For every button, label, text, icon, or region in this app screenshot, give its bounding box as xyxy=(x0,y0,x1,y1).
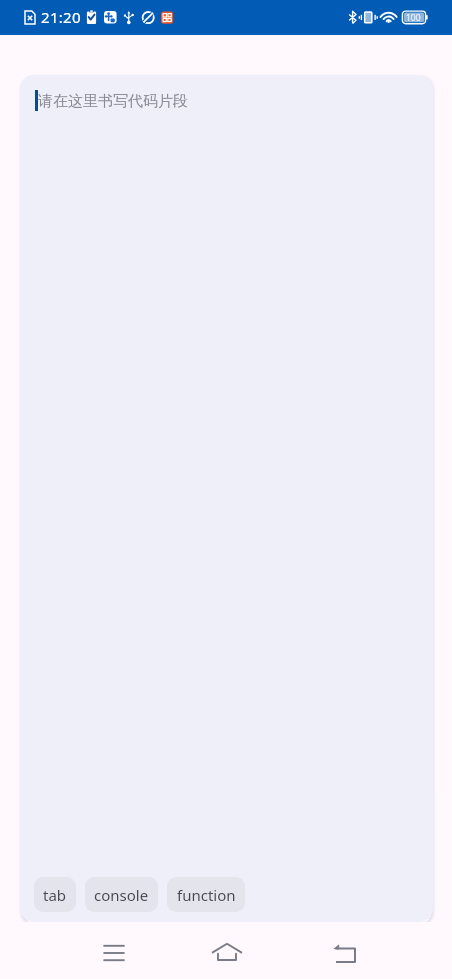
button[interactable]: tab xyxy=(34,877,76,912)
button[interactable]: Code editor xyxy=(20,75,433,922)
staticText: 请在这里书写代码片段 xyxy=(38,92,188,111)
staticText: function xyxy=(177,885,236,905)
staticText: console xyxy=(94,885,149,905)
staticText: 100 xyxy=(406,12,421,24)
button[interactable]: console xyxy=(85,877,158,912)
button[interactable]: Recent apps xyxy=(86,925,142,979)
staticText: tab xyxy=(43,885,67,905)
button[interactable]: Home xyxy=(199,925,255,979)
staticText: 21:20 xyxy=(41,7,81,27)
button[interactable]: function xyxy=(167,877,245,912)
button[interactable]: Back xyxy=(317,925,373,979)
